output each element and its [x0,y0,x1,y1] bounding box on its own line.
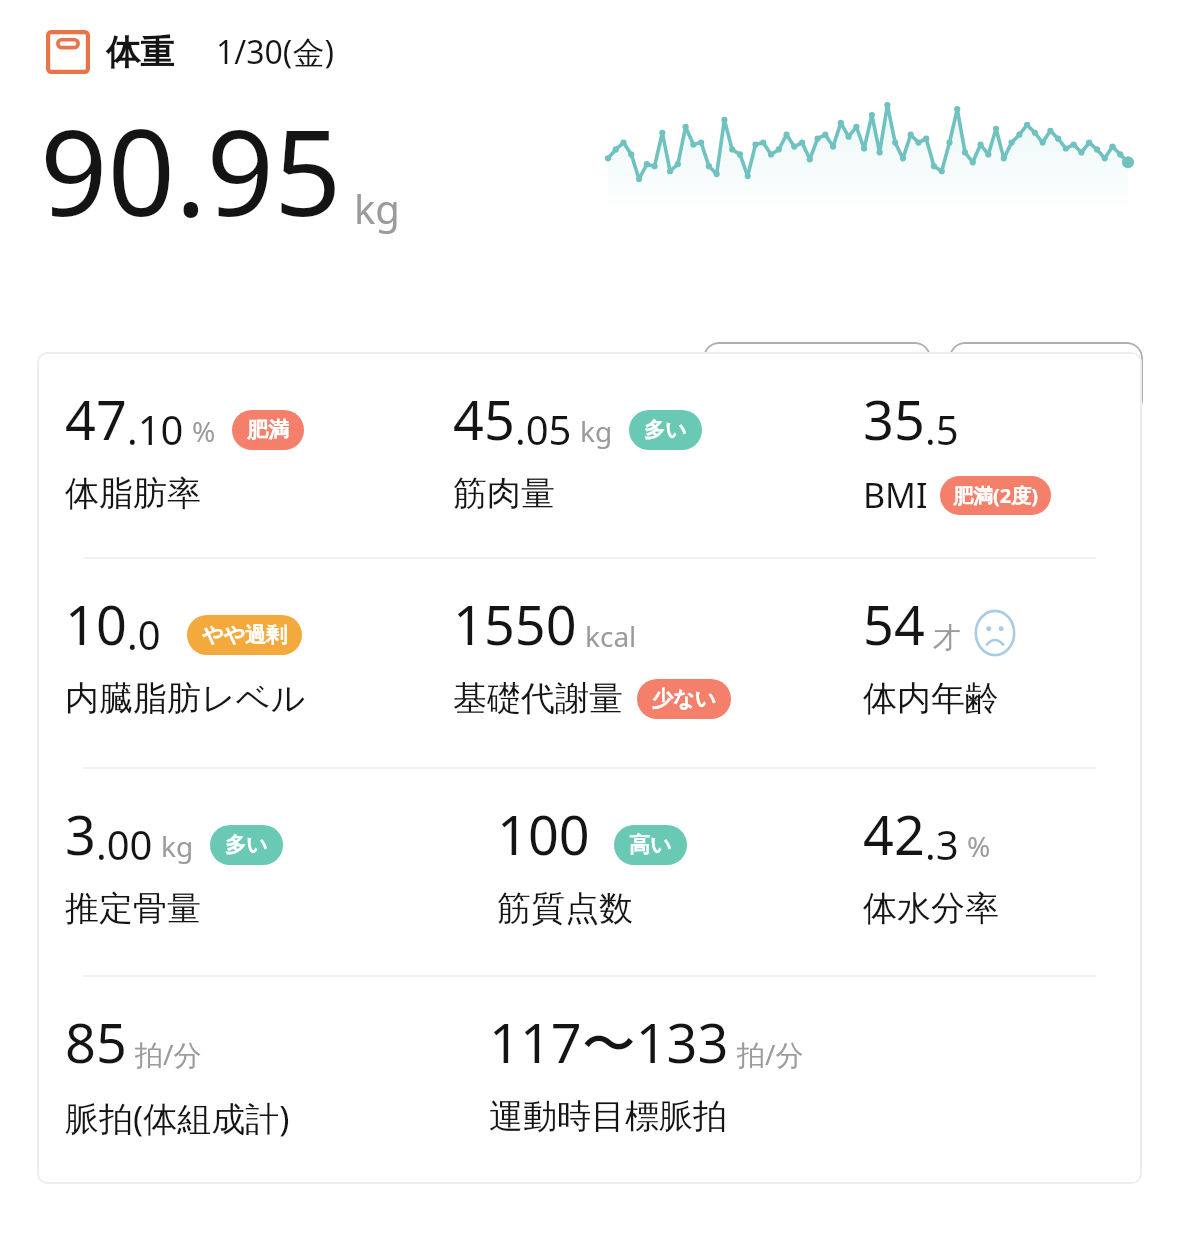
button[interactable]: 35 [863,382,1051,518]
staticText: % [192,412,216,450]
staticText: .0 [127,607,161,661]
staticText: .5 [925,402,959,456]
button[interactable]: 10 [65,587,306,720]
staticText: 多い [644,417,687,443]
staticText: 体水分率 [863,887,999,930]
staticText: 1/30(金) [216,30,335,74]
staticText: 47 [65,382,127,456]
staticText: 運動時目標脈拍 [489,1095,727,1138]
staticText: 体内年齢 [863,677,999,720]
staticText: 体脂肪率 [65,472,201,515]
staticText: 42 [863,797,925,871]
staticText: 1550 [453,587,577,661]
button[interactable]: 42 [863,797,999,930]
other: Body age mood [971,609,1019,657]
staticText: kg [161,827,194,865]
staticText: 拍/分 [135,1035,202,1073]
staticText: 肥満 [247,417,289,443]
button[interactable]: 目標設定 [949,342,1143,416]
staticText: 内臓脂肪レベル [65,677,306,720]
staticText: 35 [863,382,925,456]
staticText: 肥満(2度) [953,482,1038,509]
staticText: kg [354,181,400,235]
staticText: .00 [96,817,153,871]
staticText: 筋質点数 [497,887,633,930]
staticText: .3 [925,817,959,871]
staticText: 筋肉量 [453,472,555,515]
staticText: 100 [497,797,590,871]
staticText: 基礎代謝量 [453,677,623,720]
button[interactable]: 45 [453,382,702,515]
button[interactable]: 3 [65,797,283,930]
staticText: 10 [65,587,127,661]
staticText: kg [580,412,613,450]
staticText: % [967,827,991,865]
other: Weight scale [46,30,90,74]
button[interactable]: 100 [497,797,687,930]
staticText: 多い [225,832,268,858]
staticText: 3 [65,797,96,871]
staticText: 脈拍(体組成計) [65,1095,290,1141]
staticText: 高い [629,832,672,858]
button[interactable]: 部位別評価 [703,342,931,416]
button[interactable]: 54 [863,587,1019,720]
button[interactable]: 85 [65,1005,290,1141]
staticText: 少ない [652,686,716,712]
staticText: .10 [127,402,184,456]
staticText: 90.95 [40,90,342,251]
staticText: 45 [453,382,515,456]
staticText: 才 [933,620,961,655]
staticText: .05 [515,402,572,456]
staticText: 117〜133 [489,1005,729,1079]
staticText: 拍/分 [737,1035,804,1073]
button[interactable]: 1550 [453,587,731,720]
staticText: 推定骨量 [65,887,201,930]
staticText: 85 [65,1005,127,1079]
staticText: 54 [863,587,925,661]
staticText: kcal [585,617,637,655]
button[interactable]: 47 [65,382,304,515]
staticText: やや過剰 [202,622,287,648]
button[interactable]: 117〜133 [489,1005,804,1138]
staticText: 体重 [106,31,174,74]
staticText: BMI [863,472,928,518]
